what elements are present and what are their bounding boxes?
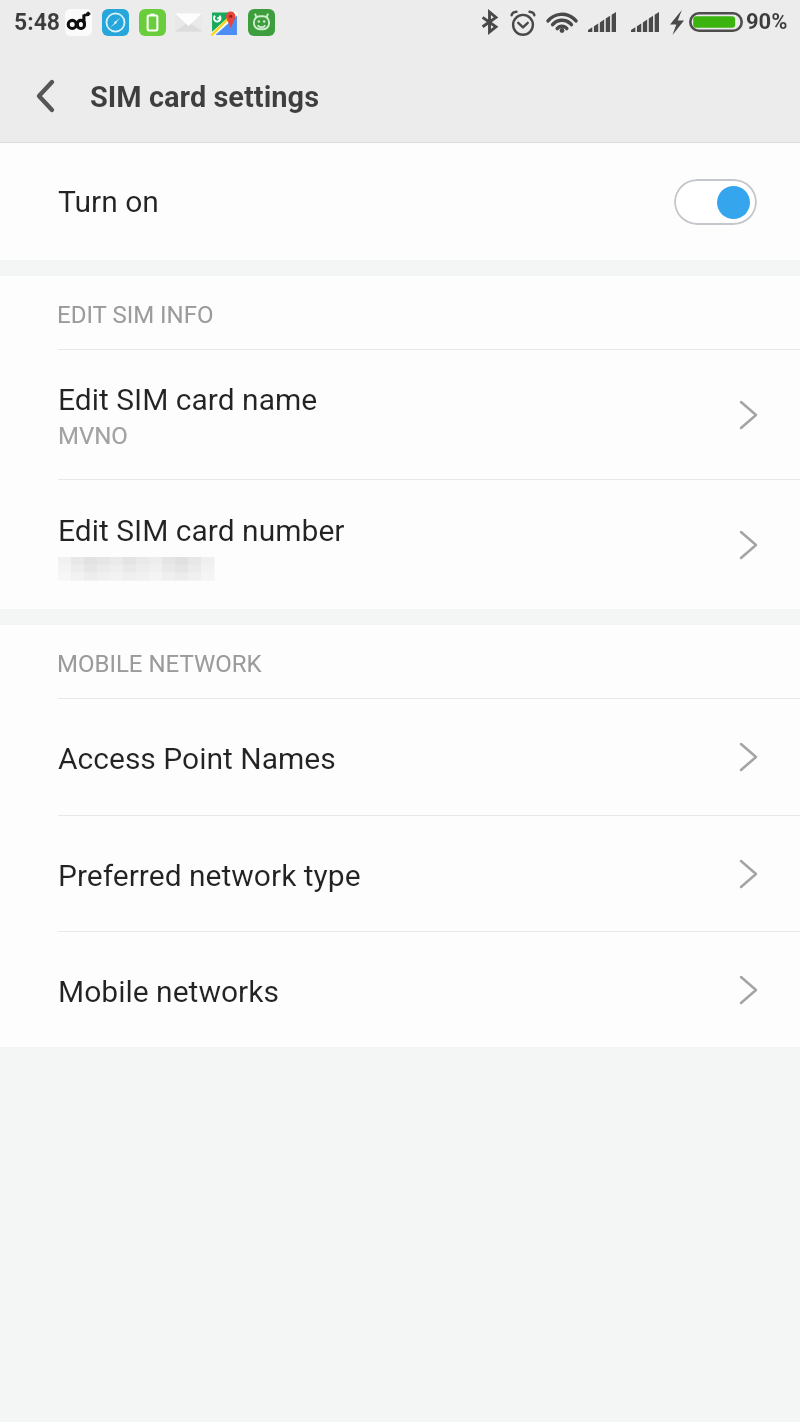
button[interactable]: Edit SIM card name — [0, 350, 800, 479]
button[interactable]: Back — [9, 48, 81, 143]
button[interactable]: Edit SIM card number — [0, 480, 800, 609]
button[interactable]: Access Point Names — [0, 699, 800, 815]
button[interactable]: Turn on — [674, 179, 757, 225]
staticText: SIM card settings — [90, 80, 320, 114]
staticText: MVNO — [58, 422, 128, 450]
staticText: Turn on — [58, 184, 159, 219]
button[interactable]: Mobile networks — [0, 932, 800, 1047]
staticText: 90% — [746, 9, 788, 35]
staticText: Edit SIM card number — [58, 513, 345, 548]
staticText: 5:48 — [14, 9, 61, 36]
staticText: EDIT SIM INFO — [57, 301, 214, 329]
button[interactable]: Preferred network type — [0, 816, 800, 931]
staticText: MOBILE NETWORK — [57, 650, 262, 678]
button[interactable]: Turn on — [0, 143, 800, 260]
staticText: Edit SIM card name — [58, 382, 318, 417]
staticText: Preferred network type — [58, 858, 361, 893]
staticText: Mobile networks — [58, 974, 279, 1009]
staticText: Access Point Names — [58, 741, 336, 776]
